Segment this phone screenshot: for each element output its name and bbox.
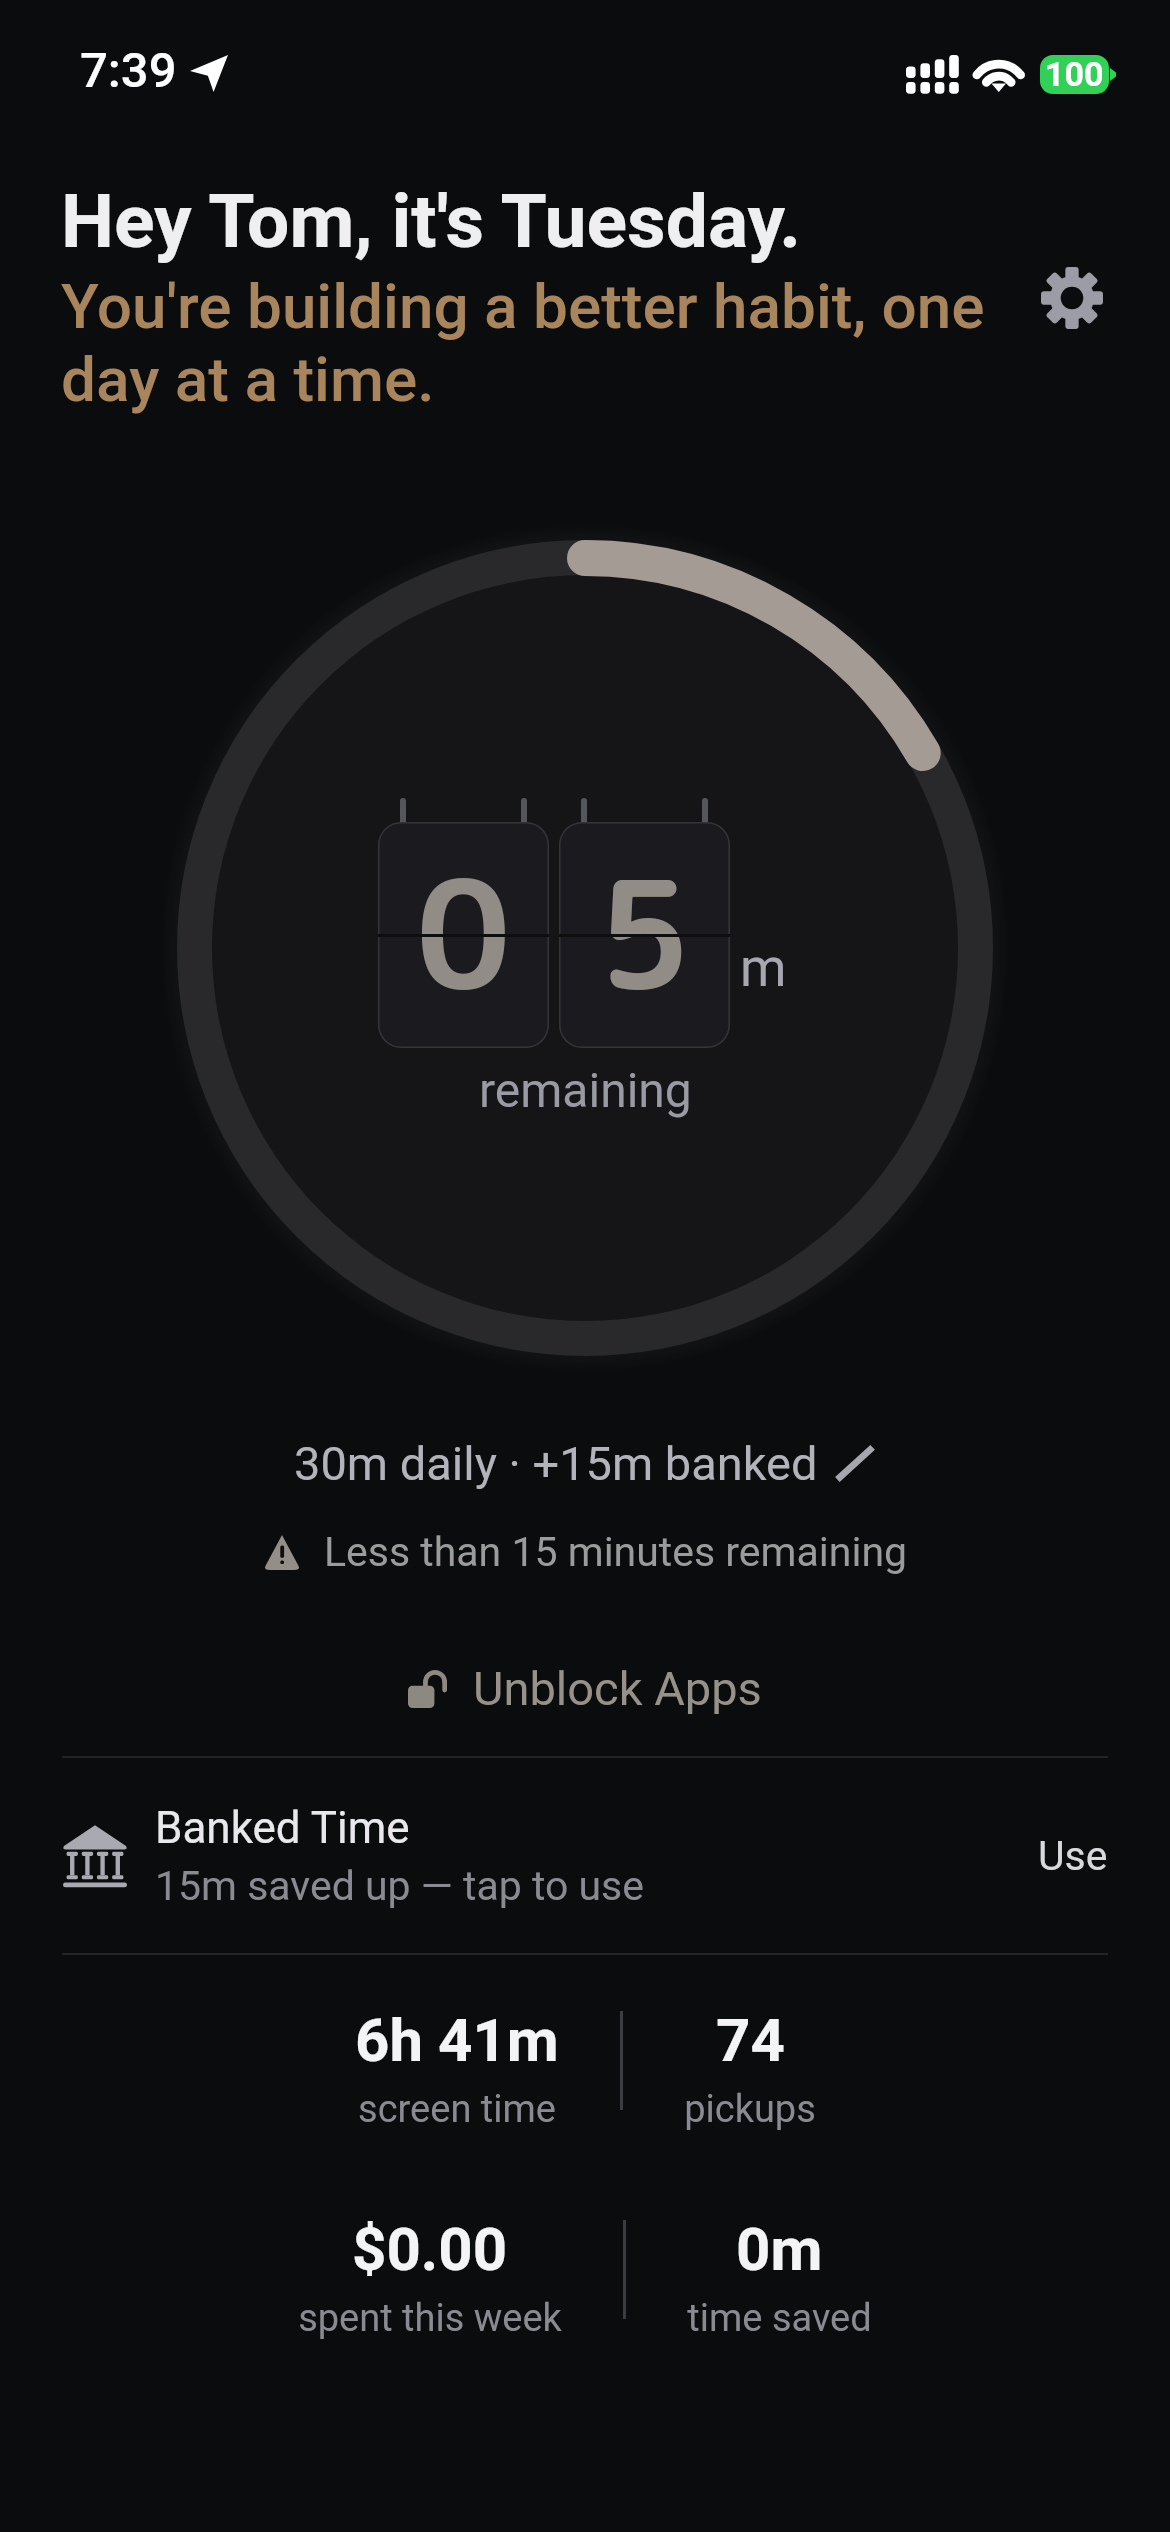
staticText: 5 — [597, 830, 692, 1036]
staticText: Less than 15 minutes remaining — [324, 1528, 908, 1576]
staticText: 74 — [716, 2005, 785, 2075]
staticText: 6h 41m — [355, 2005, 559, 2075]
button[interactable]: 30m daily · +15m banked — [278, 1428, 892, 1499]
staticText: 15m saved up — tap to use — [155, 1862, 644, 1910]
staticText: 30m daily · +15m banked — [294, 1436, 818, 1491]
staticText: screen time — [358, 2087, 556, 2132]
button[interactable]: Banked Time — [0, 1758, 1170, 1953]
staticText: remaining — [479, 1062, 692, 1118]
button[interactable]: Unblock Apps — [384, 1647, 786, 1730]
staticText: 0 — [416, 830, 511, 1036]
staticText: Banked Time — [155, 1802, 410, 1854]
staticText: 0m — [736, 2214, 823, 2284]
staticText: 100 — [1045, 55, 1104, 93]
staticText: Unblock Apps — [473, 1661, 762, 1716]
staticText: time saved — [687, 2296, 872, 2341]
staticText: pickups — [684, 2087, 816, 2132]
staticText: $0.00 — [352, 2214, 508, 2284]
staticText: m — [740, 937, 787, 999]
button[interactable]: Use — [1028, 1816, 1118, 1896]
button[interactable]: Settings — [1014, 240, 1130, 356]
staticText: Use — [1038, 1832, 1108, 1880]
staticText: Hey Tom, it's Tuesday. — [61, 177, 802, 265]
staticText: spent this week — [298, 2296, 562, 2341]
staticText: 7:39 — [80, 42, 177, 99]
staticText: You're building a better habit, one day … — [61, 270, 996, 416]
